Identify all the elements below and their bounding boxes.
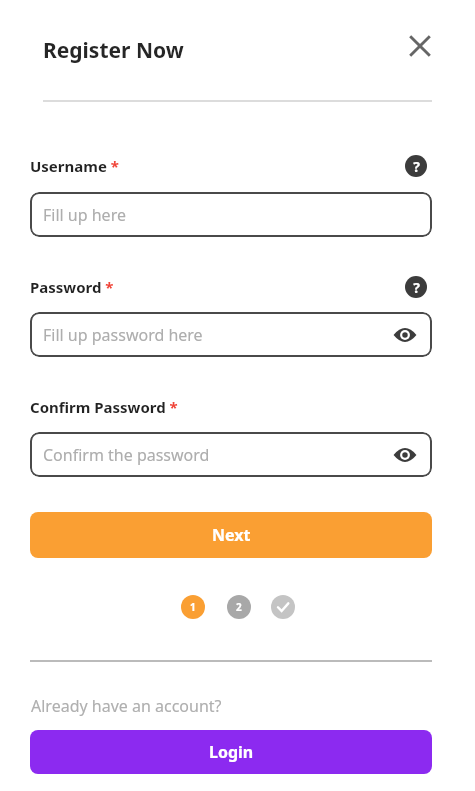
button[interactable]: Next xyxy=(30,512,432,558)
button[interactable]: Step complete xyxy=(271,595,295,619)
staticText: Password * xyxy=(30,277,114,297)
staticText: Confirm the password xyxy=(43,444,210,466)
staticText: 2 xyxy=(236,600,242,614)
staticText: Register Now xyxy=(43,36,184,65)
staticText: ? xyxy=(413,278,420,297)
staticText: Next xyxy=(212,524,251,546)
staticText: ? xyxy=(413,157,420,176)
button[interactable]: Confirm the password xyxy=(30,432,432,477)
button[interactable]: Help xyxy=(399,152,433,180)
button[interactable]: 2 xyxy=(227,595,251,619)
staticText: Login xyxy=(209,741,254,763)
button[interactable]: Show password xyxy=(388,318,422,352)
button[interactable]: Fill up password here xyxy=(30,312,432,357)
staticText: 1 xyxy=(190,600,196,614)
staticText: Already have an account? xyxy=(31,695,222,717)
button[interactable]: Login xyxy=(30,730,432,774)
staticText: Fill up password here xyxy=(43,324,203,346)
button[interactable]: Help xyxy=(399,273,433,301)
staticText: Fill up here xyxy=(43,204,126,226)
staticText: Username * xyxy=(30,156,119,176)
button[interactable]: Fill up here xyxy=(30,192,432,237)
button[interactable]: Show password xyxy=(388,438,422,472)
button[interactable]: 1 xyxy=(181,595,205,619)
staticText: Confirm Password * xyxy=(30,397,178,417)
button[interactable]: Close xyxy=(400,26,440,66)
